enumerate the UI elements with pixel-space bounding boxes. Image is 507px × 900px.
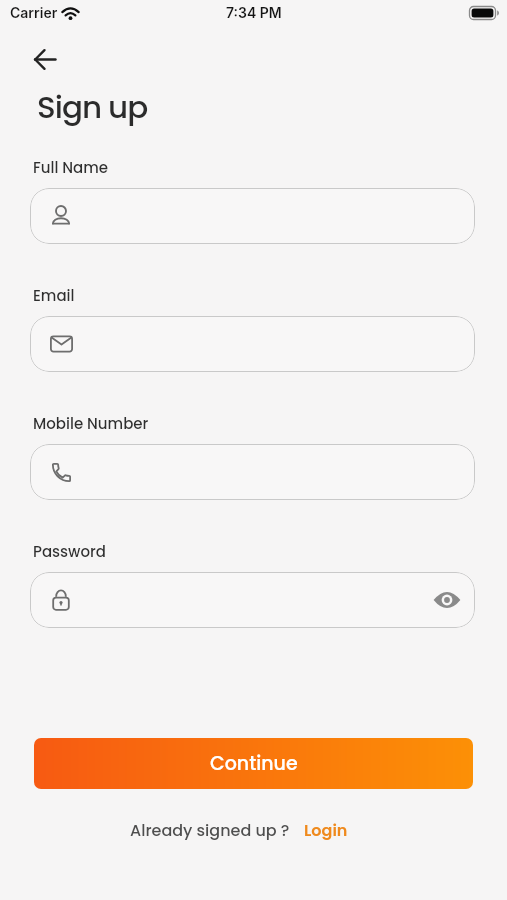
staticText: Full Name xyxy=(33,157,109,178)
button[interactable] xyxy=(33,48,57,72)
button[interactable] xyxy=(30,316,475,372)
staticText: Already signed up ? xyxy=(130,819,290,841)
staticText: Continue xyxy=(210,750,298,777)
staticText: Login xyxy=(304,819,348,841)
button[interactable] xyxy=(30,188,475,244)
staticText: Password xyxy=(33,541,106,562)
button[interactable]: Continue xyxy=(34,738,473,789)
button[interactable] xyxy=(30,572,475,628)
staticText: Mobile Number xyxy=(33,413,149,434)
button[interactable] xyxy=(30,444,475,500)
staticText: 7:34 PM xyxy=(226,4,282,21)
button[interactable]: Login xyxy=(304,819,348,841)
staticText: Email xyxy=(33,285,75,306)
staticText: Carrier xyxy=(10,4,58,21)
staticText: Sign up xyxy=(37,85,148,128)
button[interactable] xyxy=(433,591,461,609)
